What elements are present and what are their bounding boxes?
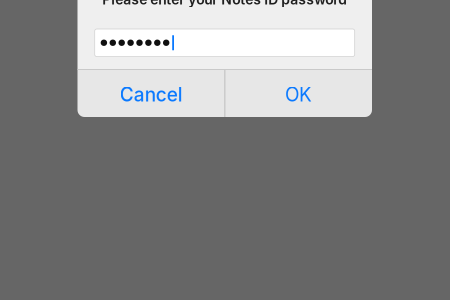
- staticText: Please enter your Notes ID password: [102, 0, 347, 8]
- button[interactable]: Cancel: [77, 69, 225, 117]
- button[interactable]: OK: [225, 69, 372, 117]
- staticText: OK: [285, 83, 312, 106]
- staticText: Cancel: [120, 83, 183, 106]
